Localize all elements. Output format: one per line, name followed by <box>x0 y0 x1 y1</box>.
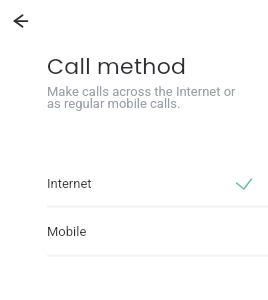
staticText: Internet <box>47 176 92 191</box>
button[interactable]: Internet <box>0 158 268 206</box>
staticText: Call method <box>47 51 187 82</box>
staticText: Make calls across the Internet or <box>47 84 236 99</box>
button[interactable]: Mobile <box>0 206 268 254</box>
staticText: as regular mobile calls. <box>47 96 181 111</box>
staticText: Mobile <box>47 224 87 239</box>
button[interactable]: Back <box>5 5 37 37</box>
